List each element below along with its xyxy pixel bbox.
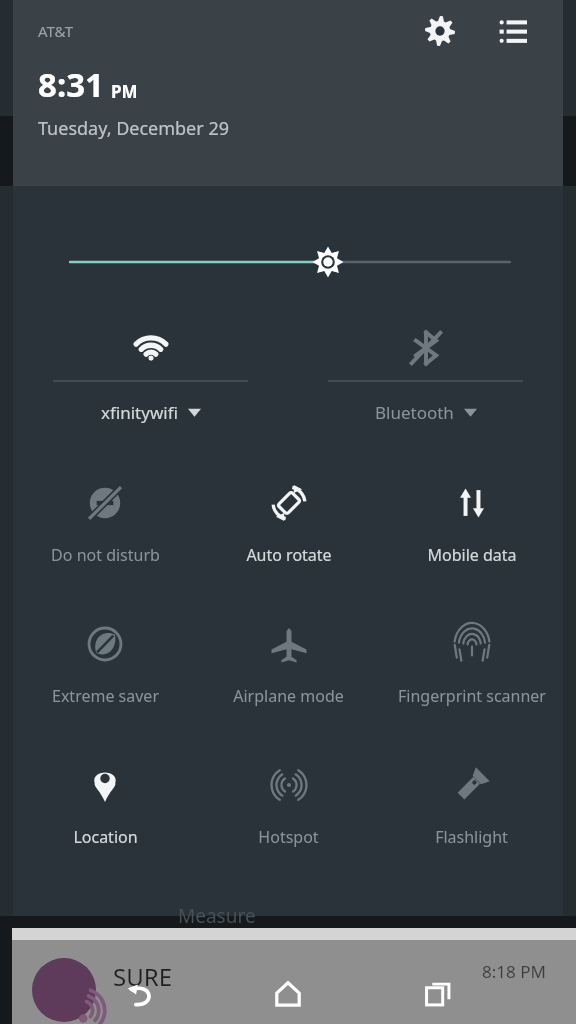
staticText: Tuesday, December 29 [38,116,229,141]
staticText: Hotspot [258,826,319,848]
button[interactable] [13,186,563,311]
button[interactable]: Hotspot [197,742,380,883]
button[interactable]: Edit order [490,8,536,54]
staticText: xfinitywifi [101,401,178,424]
button[interactable]: Back [110,964,170,1024]
staticText: Flashlight [435,826,508,848]
button[interactable]: Flashlight [380,742,563,883]
button[interactable]: Airplane mode [197,601,380,742]
button[interactable]: xfinitywifi [13,311,288,446]
button[interactable]: Mobile data [380,460,563,601]
staticText: 8:18 PM [482,960,546,983]
button[interactable]: Auto rotate [197,460,380,601]
staticText: Bluetooth [375,401,454,424]
staticText: Location [73,826,138,848]
staticText: PM [111,80,138,103]
button[interactable]: Fingerprint scanner [380,601,563,742]
staticText: 8:31 [38,62,104,107]
button[interactable]: Recents [408,964,468,1024]
button[interactable]: Bluetooth [288,311,563,446]
button[interactable]: Home [258,964,318,1024]
staticText: Mobile data [427,544,517,566]
staticText: Auto rotate [246,544,332,566]
button[interactable]: Extreme saver [13,601,197,742]
button[interactable]: Location [13,742,197,883]
staticText: Airplane mode [233,685,344,707]
button[interactable]: Settings [417,8,463,54]
staticText: Fingerprint scanner [398,685,546,707]
button[interactable]: Do not disturb [13,460,197,601]
staticText: Measure [178,903,256,929]
button[interactable]: SURE app [32,958,96,1022]
staticText: Extreme saver [52,685,159,707]
staticText: Do not disturb [51,544,160,566]
staticText: AT&T [38,21,73,41]
staticText: SURE [113,960,172,993]
